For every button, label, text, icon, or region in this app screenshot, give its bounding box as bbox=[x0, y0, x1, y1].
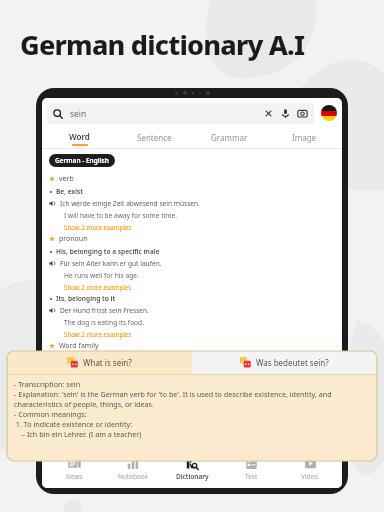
staticText: Related: ihr, aber, er, dessen, ebenfall… bbox=[56, 352, 335, 370]
button[interactable]: Image bbox=[267, 128, 342, 148]
staticText: sein bbox=[70, 108, 87, 120]
staticText: Video bbox=[301, 472, 319, 481]
staticText: German dictionary A.I bbox=[20, 26, 305, 63]
staticText: characteristics of people, things, or id… bbox=[14, 399, 154, 409]
button[interactable]: Test bbox=[224, 457, 278, 481]
staticText: Word bbox=[69, 131, 90, 142]
button[interactable]: Show 2 more examples bbox=[64, 283, 132, 291]
staticText: Sentence bbox=[137, 132, 172, 143]
staticText: verb bbox=[59, 174, 74, 184]
staticText: - Common meanings: bbox=[14, 409, 87, 419]
staticText: Test bbox=[245, 472, 258, 481]
staticText: Notebook bbox=[118, 472, 149, 481]
staticText: I will have to be away for some time. bbox=[64, 211, 177, 220]
button[interactable]: Voice search bbox=[280, 108, 291, 119]
staticText: What is sein? bbox=[83, 357, 132, 368]
button[interactable]: Show 2 more examples bbox=[64, 330, 132, 338]
staticText: Word family bbox=[59, 341, 99, 351]
staticText: 1. To indicate existence or identity: bbox=[14, 419, 133, 429]
button[interactable]: Hot bbox=[165, 457, 219, 481]
staticText: His, belonging to a specific male bbox=[56, 247, 160, 256]
button[interactable]: Show 2 more examples bbox=[64, 223, 132, 231]
button[interactable]: Was bedeutet sein? bbox=[192, 351, 377, 374]
staticText: Der Hund frisst sein Fressen. bbox=[60, 306, 149, 315]
staticText: He runs well for his age. bbox=[64, 271, 139, 280]
staticText: Its, belonging to it bbox=[56, 294, 116, 303]
button[interactable]: German language bbox=[321, 105, 337, 121]
staticText: The dog is eating its food. bbox=[64, 318, 144, 327]
button[interactable]: What is sein? bbox=[7, 351, 192, 374]
other: Search bbox=[53, 109, 63, 119]
button[interactable]: Camera search bbox=[297, 108, 308, 119]
button[interactable]: German - English bbox=[49, 154, 115, 167]
button[interactable]: Play audio bbox=[49, 200, 56, 207]
staticText: Image bbox=[292, 132, 317, 143]
button[interactable]: Sentence bbox=[117, 128, 192, 148]
button[interactable]: Grammar bbox=[192, 128, 267, 148]
button[interactable]: Clear bbox=[263, 108, 274, 119]
button[interactable]: Video bbox=[283, 457, 337, 481]
staticText: News bbox=[66, 472, 83, 481]
staticText: Was bedeutet sein? bbox=[256, 357, 329, 368]
staticText: - Transcription: sein bbox=[14, 379, 81, 389]
staticText: Ich werde einige Zeit abwesend sein müss… bbox=[60, 199, 200, 208]
staticText: Be, exist bbox=[56, 187, 83, 196]
staticText: Dictionary bbox=[176, 472, 209, 481]
button[interactable]: News bbox=[47, 457, 101, 481]
staticText: Grammar bbox=[211, 132, 248, 143]
staticText: German - English bbox=[55, 156, 109, 165]
staticText: pronoun bbox=[59, 234, 88, 244]
staticText: Für sein Alter kann er gut laufen. bbox=[60, 259, 162, 268]
staticText: – Ich bin ein Lehrer. (I am a teacher) bbox=[14, 429, 142, 439]
button[interactable]: Word bbox=[42, 128, 117, 148]
button[interactable]: Search bbox=[47, 103, 314, 124]
button[interactable]: Play audio bbox=[49, 260, 56, 267]
button[interactable]: Hot bbox=[106, 457, 160, 481]
button[interactable]: Play audio bbox=[49, 307, 56, 314]
staticText: - Explanation: 'sein' is the German verb… bbox=[14, 389, 332, 399]
